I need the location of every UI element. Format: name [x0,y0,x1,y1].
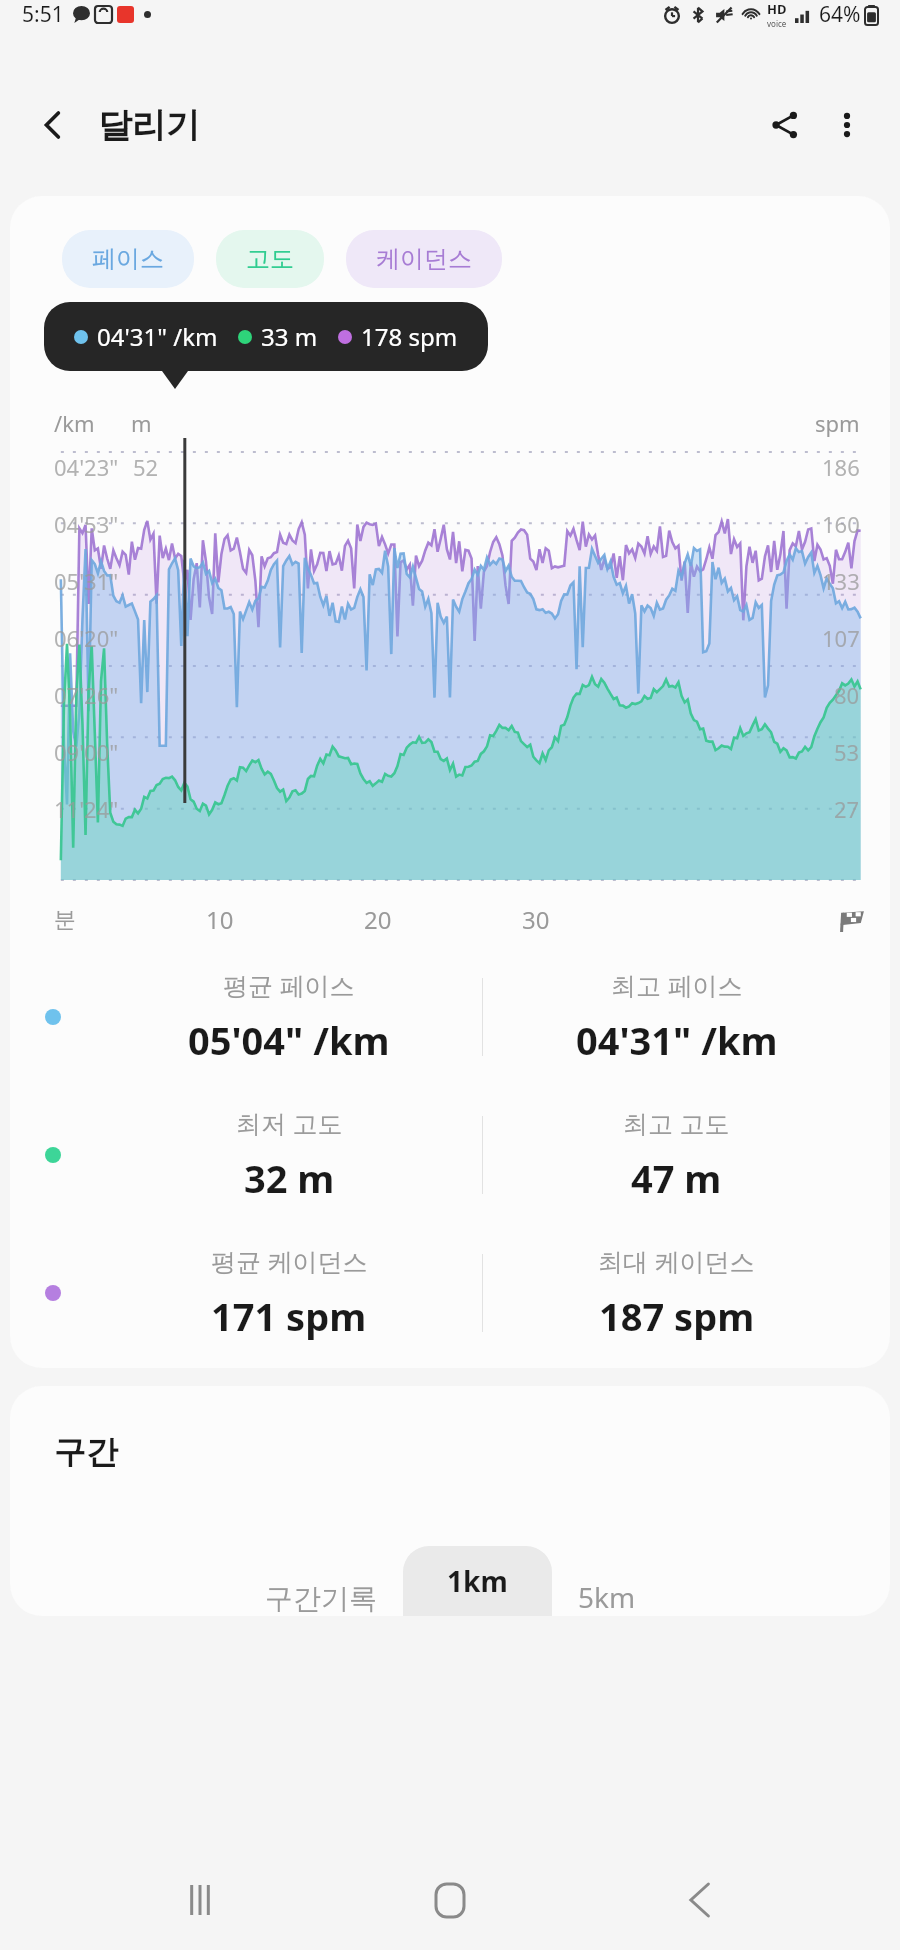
staticText: m [131,408,152,438]
button[interactable]: Recents [150,1850,250,1950]
staticText: 최저 고도 [236,1106,343,1140]
button[interactable]: Back [22,94,84,156]
button[interactable]: 고도 [216,230,324,288]
staticText: 27 [834,794,860,824]
staticText: 171 spm [211,1290,367,1342]
staticText: 09'00" [54,737,119,767]
staticText: 최대 케이던스 [598,1244,755,1278]
staticText: 1km [447,1562,508,1600]
staticText: 11'24" [54,794,119,824]
staticText: /km [54,408,95,438]
staticText: 04'31" /km [97,320,218,353]
staticText: 5:51 [22,0,64,29]
staticText: 30 [522,903,550,936]
staticText: 186 [822,452,860,482]
staticText: 페이스 [92,244,164,274]
staticText: 케이던스 [376,244,472,274]
staticText: HD [767,0,787,18]
staticText: 187 spm [599,1290,755,1342]
staticText: 53 [834,737,860,767]
staticText: 20 [364,903,392,936]
button[interactable]: More options [816,94,878,156]
staticText: 64% [819,0,861,29]
staticText: 04'31" /km [576,1014,778,1066]
button[interactable]: 1km [403,1546,552,1616]
staticText: 평균 케이던스 [211,1244,368,1278]
staticText: 05'31" [54,566,119,596]
staticText: 06'20" [54,623,119,653]
staticText: 52 [133,452,159,482]
staticText: spm [815,408,860,438]
staticText: 분 [54,906,76,934]
button[interactable]: Back [650,1850,750,1950]
button[interactable]: Share [754,94,816,156]
staticText: 04'23" [54,452,119,482]
staticText: 구간 [54,1432,118,1472]
button[interactable]: 케이던스 [346,230,502,288]
button[interactable]: Home [400,1850,500,1950]
staticText: 5km [578,1578,636,1616]
staticText: 구간기록 [265,1581,377,1616]
staticText: 32 m [244,1152,335,1204]
staticText: 평균 페이스 [223,968,355,1002]
staticText: 133 [822,566,860,596]
staticText: 04'53" [54,509,119,539]
button[interactable]: 5km [552,1578,662,1616]
staticText: 07'26" [54,680,119,710]
staticText: 최고 페이스 [611,968,743,1002]
staticText: 47 m [631,1152,722,1204]
staticText: 달리기 [98,104,200,147]
staticText: 107 [822,623,860,653]
staticText: 80 [834,680,860,710]
staticText: 33 m [261,320,318,353]
staticText: voice [767,18,787,29]
staticText: 10 [206,903,234,936]
button[interactable]: 페이스 [62,230,194,288]
staticText: 160 [822,509,860,539]
button[interactable]: 평균 페이스 [10,968,890,1066]
button[interactable]: 최저 고도 [10,1106,890,1204]
staticText: 05'04" /km [188,1014,390,1066]
staticText: 고도 [246,244,294,274]
staticText: 최고 고도 [623,1106,730,1140]
staticText: 178 spm [361,320,458,353]
button[interactable]: 구간기록 [239,1581,403,1616]
button[interactable]: 평균 케이던스 [10,1244,890,1342]
